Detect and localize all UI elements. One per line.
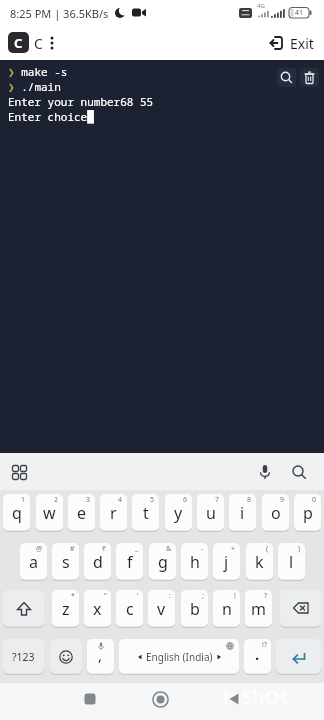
staticText: InShOt: [222, 684, 288, 710]
staticText: .: [255, 644, 260, 664]
staticText: 7: [215, 495, 220, 505]
staticText: :: [169, 591, 171, 601]
staticText: d: [93, 551, 103, 573]
staticText: r: [110, 502, 117, 524]
button[interactable]: Exit: [266, 30, 320, 56]
staticText: ): [298, 544, 301, 554]
staticText: k: [255, 551, 264, 573]
staticText: ?123: [12, 650, 35, 664]
button[interactable]: [148, 687, 172, 711]
staticText: &: [166, 544, 172, 554]
staticText: 2: [54, 495, 59, 505]
staticText: p: [303, 502, 313, 524]
staticText: ,: [98, 645, 103, 665]
button[interactable]: [252, 459, 278, 485]
staticText: ❯ make -s: [8, 64, 68, 79]
staticText: j: [224, 551, 229, 573]
staticText: 3: [86, 495, 91, 505]
button[interactable]: t: [132, 494, 159, 532]
staticText: a: [29, 551, 38, 573]
button[interactable]: p: [294, 494, 321, 532]
staticText: q: [12, 502, 22, 524]
button[interactable]: i: [229, 494, 256, 532]
button[interactable]: y: [165, 494, 192, 532]
button[interactable]: z: [52, 590, 79, 628]
staticText: m: [251, 598, 266, 620]
staticText: 41: [295, 8, 304, 18]
staticText: 1: [21, 495, 26, 505]
staticText: f: [127, 551, 133, 573]
button[interactable]: ,: [87, 639, 114, 675]
staticText: *: [71, 591, 75, 601]
button[interactable]: e: [68, 494, 95, 532]
button[interactable]: [78, 687, 102, 711]
button[interactable]: j: [213, 543, 240, 581]
staticText: b: [190, 598, 200, 620]
button[interactable]: k: [246, 543, 273, 581]
staticText: v: [157, 598, 166, 620]
staticText: 0: [312, 495, 317, 505]
staticText: -: [201, 544, 204, 554]
staticText: ': [137, 591, 139, 601]
staticText: s: [62, 551, 70, 573]
staticText: e: [77, 502, 87, 524]
button[interactable]: w: [36, 494, 63, 532]
button[interactable]: [280, 590, 321, 628]
button[interactable]: d: [84, 543, 111, 581]
staticText: 5: [150, 495, 155, 505]
button[interactable]: x: [84, 590, 111, 628]
button[interactable]: g: [149, 543, 176, 581]
staticText: Exit: [290, 34, 314, 53]
button[interactable]: [286, 459, 312, 485]
button[interactable]: English (India): [119, 639, 239, 675]
staticText: y: [174, 502, 183, 524]
staticText: l: [289, 551, 294, 573]
button[interactable]: v: [148, 590, 175, 628]
button[interactable]: [50, 639, 82, 675]
staticText: ₹: [102, 544, 107, 554]
staticText: +: [231, 544, 236, 554]
button[interactable]: n: [213, 590, 240, 628]
button[interactable]: s: [52, 543, 79, 581]
staticText: ;: [202, 591, 204, 601]
staticText: ": [104, 591, 107, 601]
button[interactable]: o: [262, 494, 289, 532]
button[interactable]: [277, 68, 296, 87]
staticText: !: [234, 591, 236, 601]
button[interactable]: C: [34, 34, 43, 53]
button[interactable]: [3, 590, 44, 628]
button[interactable]: .: [244, 639, 271, 675]
button[interactable]: q: [3, 494, 30, 532]
staticText: English (India): [146, 650, 213, 664]
button[interactable]: [222, 687, 246, 711]
button[interactable]: a: [20, 543, 47, 581]
staticText: w: [43, 502, 56, 524]
button[interactable]: [300, 68, 319, 87]
button[interactable]: [44, 30, 60, 56]
button[interactable]: h: [181, 543, 208, 581]
button[interactable]: l: [278, 543, 305, 581]
staticText: g: [158, 551, 168, 573]
staticText: z: [62, 598, 70, 620]
button[interactable]: u: [197, 494, 224, 532]
button[interactable]: r: [100, 494, 127, 532]
staticText: 4: [118, 495, 123, 505]
staticText: o: [271, 502, 281, 524]
staticText: (: [266, 544, 269, 554]
staticText: C: [14, 34, 23, 52]
button[interactable]: f: [116, 543, 143, 581]
staticText: ❯ ./main: [8, 79, 61, 94]
button[interactable]: m: [245, 590, 272, 628]
button[interactable]: b: [181, 590, 208, 628]
staticText: i: [240, 502, 245, 524]
staticText: 8:25 PM | 36.5KB/s: [10, 6, 109, 21]
staticText: Enter your number68 55: [8, 94, 154, 109]
button[interactable]: c: [116, 590, 143, 628]
staticText: 6: [183, 495, 188, 505]
staticText: ?: [264, 591, 268, 601]
staticText: c: [126, 598, 134, 620]
button[interactable]: [6, 459, 32, 485]
button[interactable]: ?123: [3, 639, 44, 675]
staticText: h: [190, 551, 200, 573]
button[interactable]: [276, 639, 321, 675]
